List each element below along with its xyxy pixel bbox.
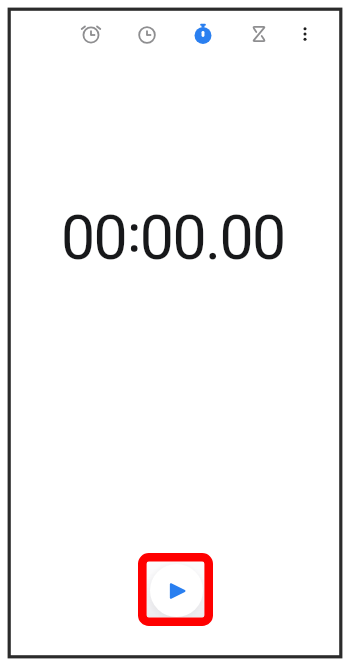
button[interactable]: Stopwatch	[185, 17, 221, 53]
button[interactable]: Start	[150, 564, 203, 617]
button[interactable]: Alarm	[73, 17, 109, 53]
button[interactable]: More options	[287, 16, 323, 52]
button[interactable]: Clock	[129, 17, 165, 53]
other: 00:00.00	[55, 195, 295, 279]
button[interactable]: Timer	[241, 16, 277, 52]
